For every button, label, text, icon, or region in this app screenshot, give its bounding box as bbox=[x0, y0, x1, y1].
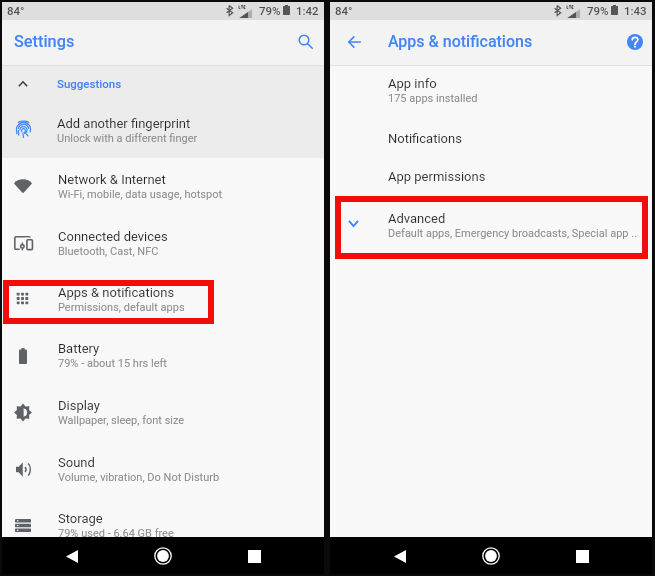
button[interactable]: Recent apps bbox=[241, 543, 267, 569]
button[interactable]: Home bbox=[150, 543, 176, 569]
button[interactable]: Apps & notifications bbox=[0, 270, 322, 327]
button[interactable]: App permissions bbox=[330, 157, 652, 194]
button[interactable]: Notifications bbox=[330, 119, 652, 156]
button[interactable]: Apps & notifications bbox=[0, 270, 322, 327]
button[interactable]: Home bbox=[478, 543, 504, 569]
staticText: Volume, vibration, Do Not Disturb bbox=[58, 471, 220, 484]
staticText: Settings bbox=[14, 32, 75, 51]
staticText: Connected devices bbox=[58, 229, 168, 244]
button[interactable]: Advanced bbox=[335, 196, 648, 259]
staticText: 84° bbox=[335, 4, 353, 17]
staticText: 79% used - 6.64 GB free bbox=[58, 527, 174, 540]
staticText: Default apps, Emergency broadcasts, Spec… bbox=[388, 227, 638, 240]
staticText: Permissions, default apps bbox=[58, 301, 185, 314]
button[interactable]: Storage bbox=[0, 496, 322, 553]
button[interactable]: Recent apps bbox=[569, 543, 595, 569]
staticText: Apps & notifications bbox=[58, 285, 175, 300]
staticText: Add another fingerprint bbox=[57, 116, 191, 131]
staticText: Display bbox=[58, 398, 100, 413]
button[interactable]: Back bbox=[387, 543, 413, 569]
button[interactable]: Add another fingerprint bbox=[2, 112, 320, 152]
staticText: Unlock with a different finger bbox=[57, 132, 198, 145]
staticText: Permissions, default apps bbox=[58, 301, 185, 314]
button[interactable]: Search bbox=[292, 28, 318, 54]
staticText: 79% - about 15 hrs left bbox=[58, 357, 167, 370]
staticText: 79% bbox=[259, 4, 281, 17]
staticText: App info bbox=[388, 76, 437, 91]
button[interactable]: Display bbox=[0, 383, 322, 440]
staticText: Suggestions bbox=[57, 77, 122, 90]
staticText: Battery bbox=[58, 341, 100, 356]
staticText: App permissions bbox=[388, 169, 486, 184]
staticText: Wallpaper, sleep, font size bbox=[58, 414, 185, 427]
staticText: Bluetooth, Cast, NFC bbox=[58, 245, 159, 258]
staticText: Apps & notifications bbox=[388, 32, 533, 51]
staticText: 175 apps installed bbox=[388, 92, 478, 105]
staticText: 1:43 bbox=[624, 4, 647, 17]
button[interactable]: Back bbox=[59, 543, 85, 569]
staticText: 1:42 bbox=[296, 4, 319, 17]
staticText: Apps & notifications bbox=[58, 285, 175, 300]
button[interactable]: Connected devices bbox=[0, 214, 322, 271]
staticText: Advanced bbox=[388, 211, 446, 226]
button[interactable]: Navigate up bbox=[340, 29, 366, 55]
staticText: Notifications bbox=[388, 131, 462, 146]
button[interactable]: App info bbox=[330, 65, 652, 110]
staticText: Wi-Fi, mobile, data usage, hotspot bbox=[58, 188, 223, 201]
button[interactable]: Help bbox=[622, 29, 648, 55]
staticText: Storage bbox=[58, 511, 103, 526]
button[interactable]: Sound bbox=[0, 440, 322, 497]
staticText: Sound bbox=[58, 455, 95, 470]
button[interactable]: Suggestions bbox=[2, 67, 320, 97]
button[interactable]: Network & Internet bbox=[0, 157, 322, 214]
staticText: Network & Internet bbox=[58, 172, 166, 187]
button[interactable]: Battery bbox=[0, 326, 322, 383]
staticText: 84° bbox=[7, 4, 25, 17]
staticText: 79% bbox=[587, 4, 609, 17]
